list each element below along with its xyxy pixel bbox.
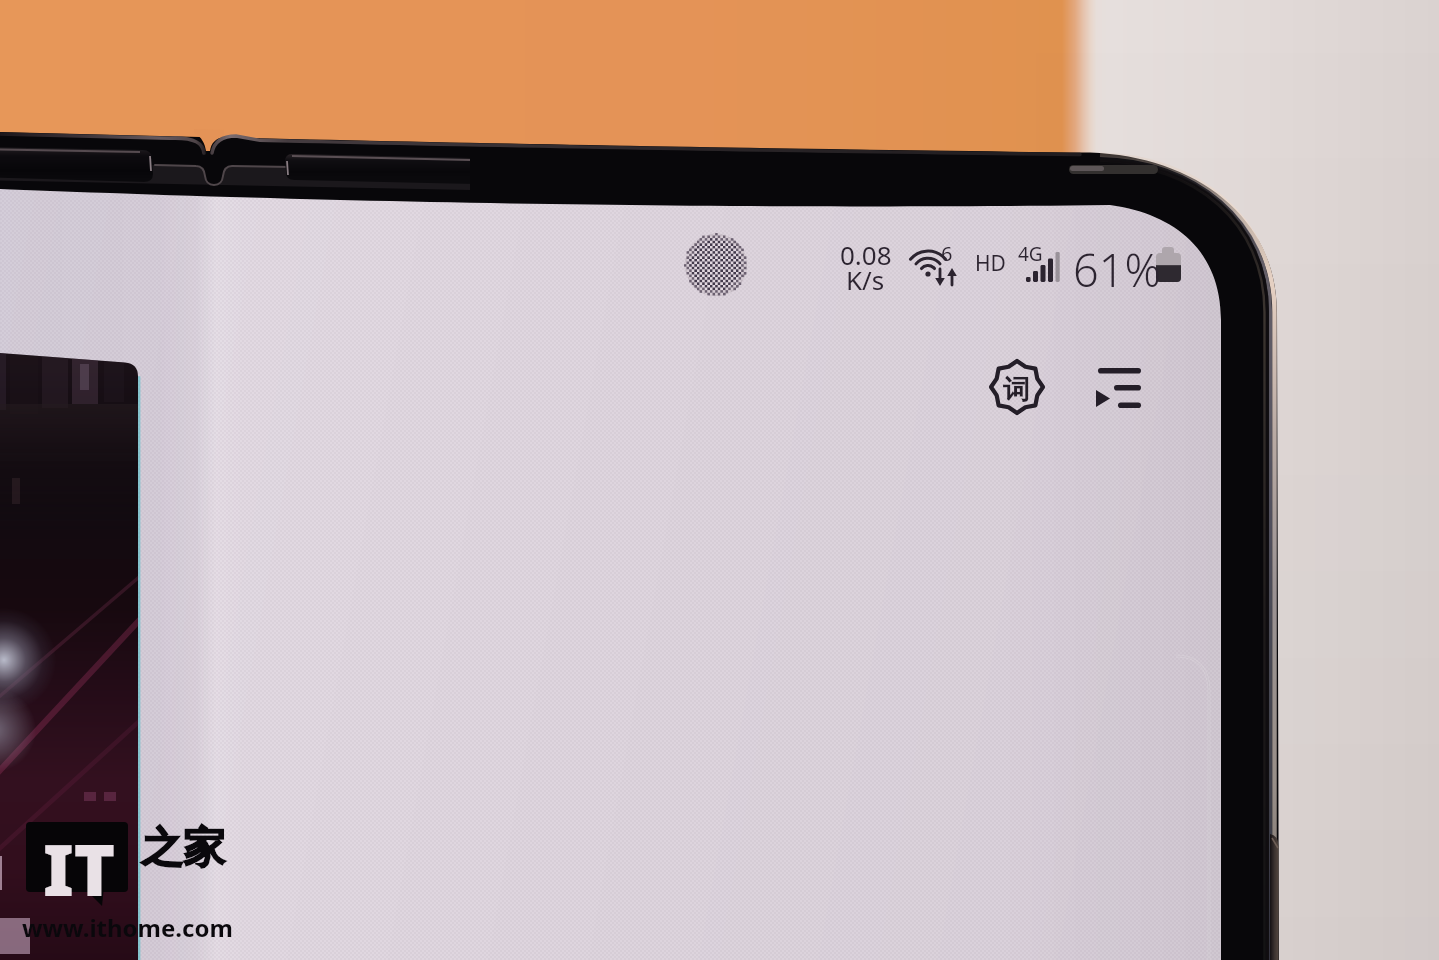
staticText: 0.08 xyxy=(840,237,892,272)
button[interactable]: Playing queue xyxy=(1086,356,1150,420)
button[interactable]: Now playing artwork xyxy=(0,356,138,960)
button[interactable]: Lyrics xyxy=(984,354,1051,421)
staticText: 6 xyxy=(941,240,953,267)
staticText: 之家 xyxy=(141,822,225,875)
staticText: IT xyxy=(43,821,116,916)
staticText: 词 xyxy=(1003,373,1030,407)
staticText: HD xyxy=(975,249,1006,278)
staticText: K/s xyxy=(846,262,885,297)
staticText: 4G xyxy=(1018,241,1043,267)
staticText: 61% xyxy=(1073,239,1161,300)
staticText: www.ithome.com xyxy=(22,911,233,944)
button[interactable]: Status bar xyxy=(820,228,1190,290)
